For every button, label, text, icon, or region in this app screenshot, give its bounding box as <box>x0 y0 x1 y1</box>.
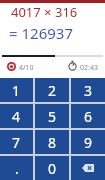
button[interactable]: 0 <box>35 156 69 180</box>
staticText: 1 <box>12 81 21 100</box>
button[interactable]: 9 <box>71 130 105 154</box>
button[interactable]: 5 <box>35 104 69 128</box>
button[interactable]: 1 <box>0 78 33 102</box>
staticText: . <box>15 159 19 178</box>
button[interactable]: 2 <box>35 78 69 102</box>
button[interactable]: 8 <box>35 130 69 154</box>
button[interactable]: 7 <box>0 130 33 154</box>
staticText: 9 <box>84 133 93 152</box>
staticText: 3 <box>84 81 93 100</box>
button[interactable] <box>71 156 105 180</box>
button[interactable]: 6 <box>71 104 105 128</box>
staticText: = 126937 <box>9 23 73 43</box>
button[interactable]: . <box>0 156 33 180</box>
staticText: 6 <box>84 107 93 126</box>
staticText: 8 <box>48 133 57 152</box>
staticText: 02:43 <box>80 63 98 73</box>
staticText: 4017 × 316 <box>11 3 78 21</box>
staticText: 4 <box>12 107 21 126</box>
button[interactable]: 4 <box>0 104 33 128</box>
staticText: 7 <box>12 133 21 152</box>
button[interactable]: 3 <box>71 78 105 102</box>
staticText: 5 <box>48 107 57 126</box>
staticText: 4/10 <box>19 63 34 73</box>
staticText: 0 <box>48 159 57 178</box>
staticText: 2 <box>48 81 57 100</box>
